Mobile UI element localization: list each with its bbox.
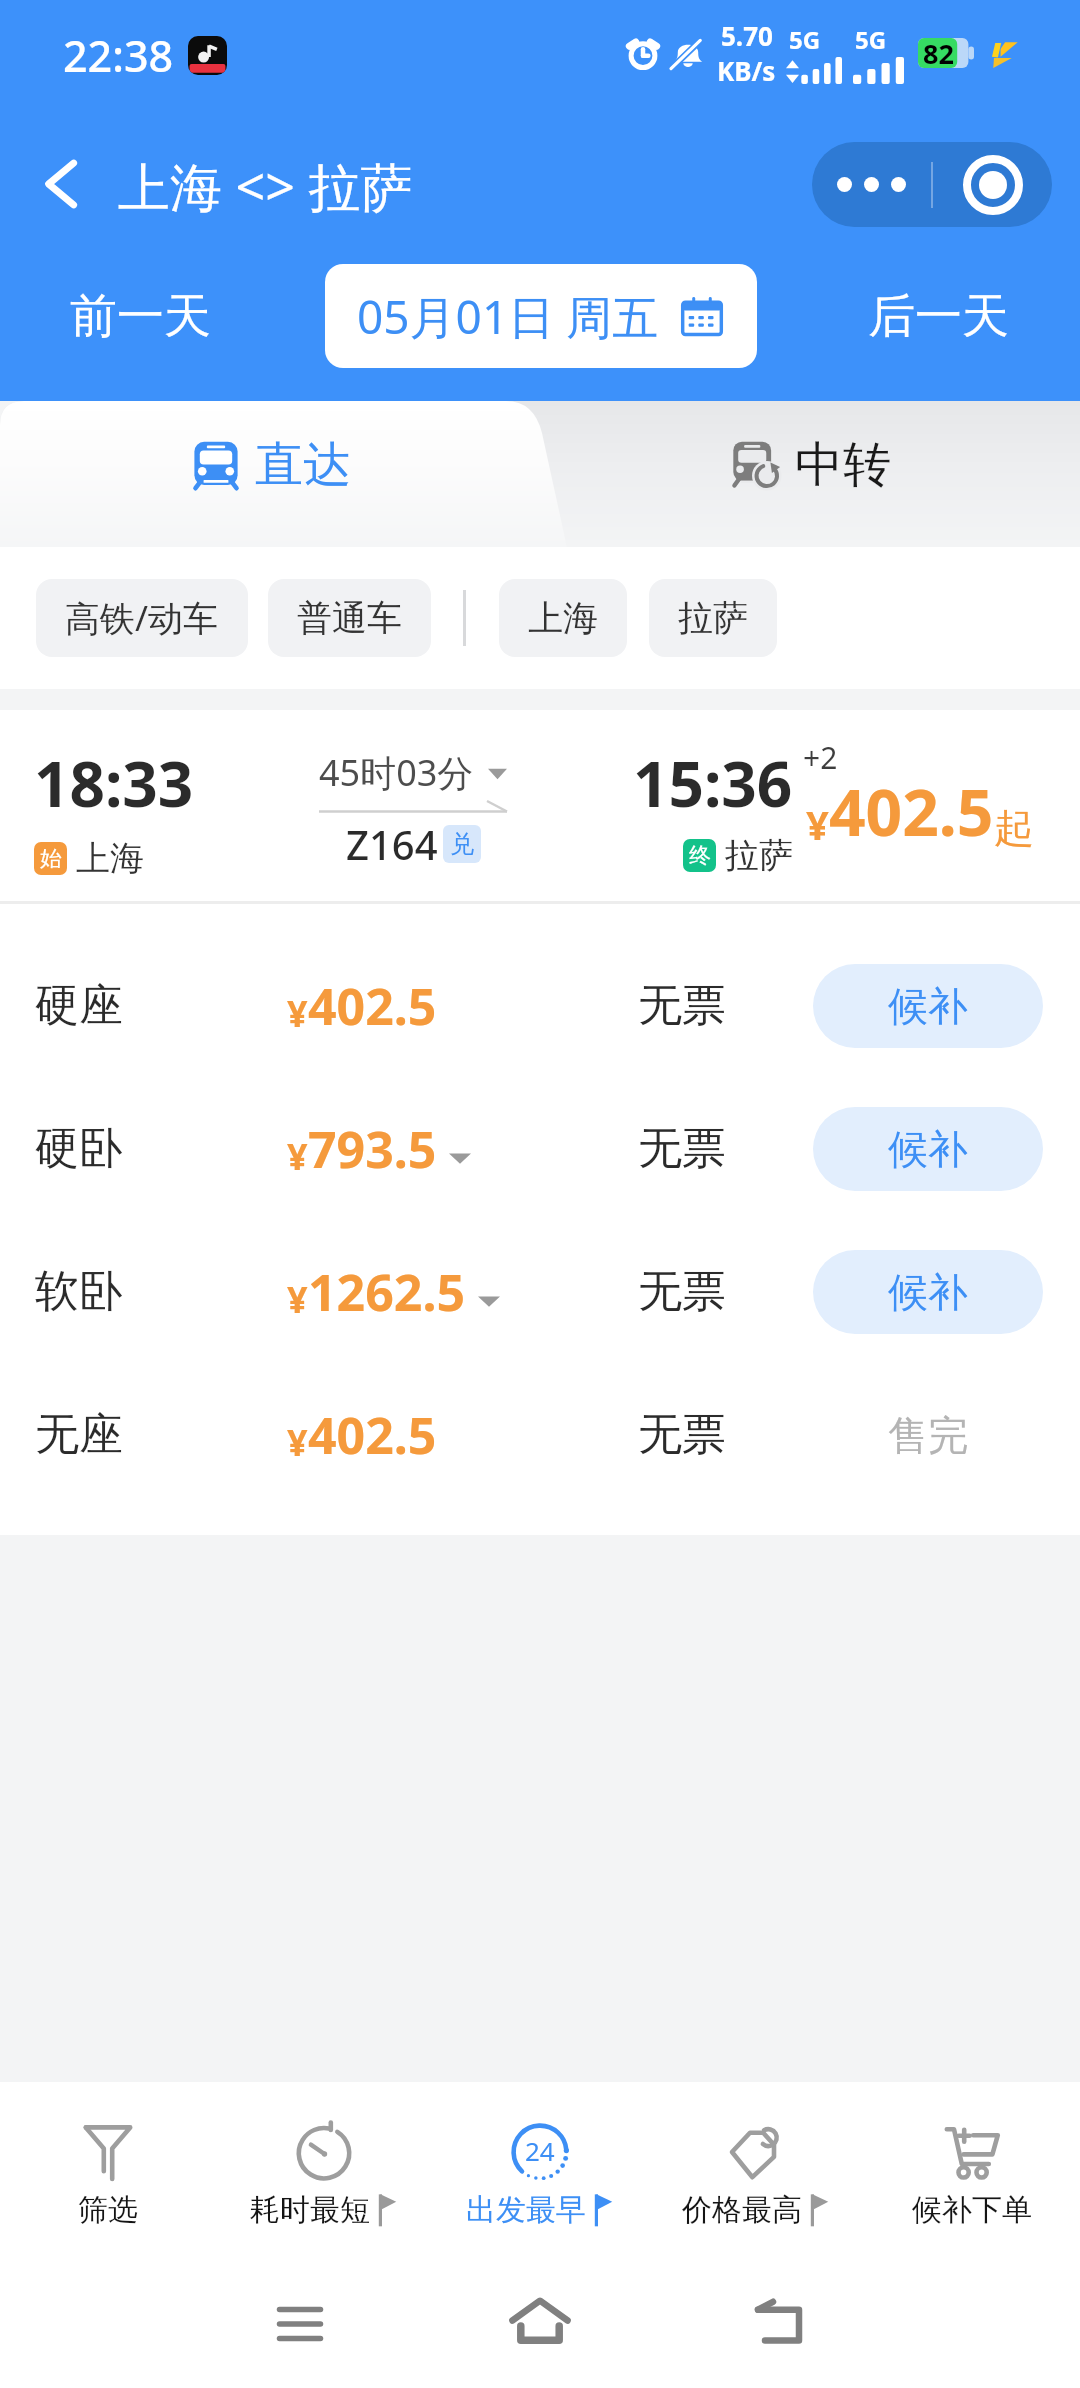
staticText: 45时03分 — [319, 748, 474, 797]
button[interactable]: Record — [933, 142, 1052, 227]
button[interactable]: 候补 — [813, 1250, 1043, 1334]
staticText: 直达 — [255, 435, 351, 495]
staticText: 18:33 — [34, 741, 194, 825]
staticText: 上海 — [528, 596, 598, 640]
button[interactable]: 筛选 — [0, 2082, 216, 2264]
staticText: 兑 — [450, 829, 474, 859]
button[interactable]: 候补 — [813, 964, 1043, 1048]
staticText: 拉萨 — [678, 596, 748, 640]
button[interactable]: 耗时最短 — [216, 2082, 432, 2264]
button[interactable]: 18:33 — [0, 710, 1080, 901]
staticText: 1262.5 — [308, 1258, 466, 1326]
staticText: 出发最早 — [466, 2191, 586, 2229]
staticText: 24 — [525, 2133, 555, 2168]
staticText: 无票 — [638, 1264, 726, 1319]
staticText: 中转 — [795, 435, 891, 495]
button[interactable]: More options — [812, 142, 931, 227]
staticText: 候补 — [888, 1124, 968, 1174]
staticText: 无座 — [35, 1407, 123, 1462]
staticText: 793.5 — [308, 1115, 437, 1183]
staticText: 软卧 — [35, 1264, 123, 1319]
staticText: 耗时最短 — [250, 2191, 370, 2229]
staticText: 无票 — [638, 978, 726, 1033]
staticText: 402.5 — [308, 1401, 437, 1469]
button[interactable]: 上海 — [499, 579, 627, 657]
staticText: 候补 — [888, 1267, 968, 1317]
staticText: 402.5 — [829, 768, 994, 855]
staticText: 价格最高 — [682, 2191, 802, 2229]
staticText: 上海 — [76, 837, 144, 880]
staticText: ¥ — [287, 1418, 308, 1467]
staticText: 售完 — [888, 1410, 968, 1460]
staticText: 前一天 — [70, 287, 211, 346]
staticText: 402.5 — [308, 972, 437, 1040]
button[interactable]: Recent apps — [240, 2264, 360, 2388]
button[interactable]: 高铁/动车 — [36, 579, 248, 657]
button[interactable]: 价格最高 — [648, 2082, 864, 2264]
staticText: ¥ — [287, 989, 308, 1038]
button[interactable]: 候补下单 — [864, 2082, 1080, 2264]
button[interactable]: 中转 — [540, 401, 1080, 547]
button[interactable]: Back — [720, 2264, 840, 2388]
staticText: 无票 — [638, 1121, 726, 1176]
staticText: 终 — [689, 842, 711, 870]
staticText: 05月01日 周五 — [357, 285, 659, 348]
button[interactable]: 普通车 — [268, 579, 431, 657]
staticText: 5G — [789, 23, 821, 56]
staticText: KB/s — [717, 53, 776, 88]
staticText: 拉萨 — [725, 834, 793, 877]
staticText: 无票 — [638, 1407, 726, 1462]
button[interactable]: 05月01日 周五 — [325, 264, 757, 368]
staticText: 始 — [40, 845, 62, 873]
staticText: ¥ — [287, 1275, 308, 1324]
button[interactable]: 候补 — [813, 1107, 1043, 1191]
button[interactable]: 24 — [432, 2082, 648, 2264]
staticText: +2 — [803, 737, 838, 778]
button[interactable]: 后一天 — [818, 264, 1058, 368]
staticText: ¥ — [287, 1132, 308, 1181]
staticText: 硬座 — [35, 978, 123, 1033]
staticText: 5.70 — [721, 18, 773, 53]
staticText: 候补下单 — [912, 2191, 1032, 2229]
staticText: 上海 <> 拉萨 — [118, 150, 413, 221]
staticText: 起 — [994, 803, 1034, 853]
staticText: 22:38 — [63, 26, 174, 85]
button[interactable]: 拉萨 — [649, 579, 777, 657]
staticText: 后一天 — [868, 287, 1009, 346]
button[interactable]: Back — [22, 144, 102, 224]
staticText: 普通车 — [297, 596, 402, 640]
staticText: 候补 — [888, 981, 968, 1031]
staticText: 5G — [855, 23, 887, 56]
staticText: 82 — [923, 35, 954, 71]
button[interactable]: 前一天 — [20, 264, 260, 368]
button[interactable]: 直达 — [0, 401, 540, 547]
button[interactable]: Home — [480, 2264, 600, 2388]
staticText: ¥ — [806, 797, 829, 851]
staticText: 高铁/动车 — [65, 594, 219, 642]
staticText: 15:36 — [633, 741, 793, 825]
staticText: Z164 — [346, 817, 438, 871]
staticText: 筛选 — [78, 2191, 138, 2229]
staticText: 硬卧 — [35, 1121, 123, 1176]
